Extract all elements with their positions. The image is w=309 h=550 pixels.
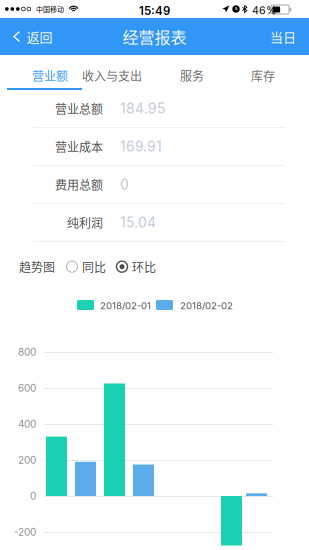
staticText: 0 (120, 176, 129, 193)
staticText: 环比 (132, 258, 156, 275)
staticText: 800 (18, 346, 36, 358)
staticText: 中国移动 (36, 4, 64, 14)
staticText: 0 (30, 490, 36, 502)
staticText: 趋势图 (19, 258, 55, 275)
staticText: 200 (18, 454, 36, 466)
staticText: 营业总额 (55, 100, 103, 117)
button[interactable]: 库存 (232, 59, 294, 92)
staticText: 收入与支出 (82, 67, 142, 84)
staticText: 同比 (82, 258, 106, 275)
staticText: 600 (18, 382, 36, 394)
staticText: -200 (14, 526, 36, 538)
staticText: 15.04 (120, 214, 156, 231)
staticText: 服务 (180, 67, 204, 84)
staticText: 费用总额 (55, 176, 103, 193)
staticText: 2018/02-02 (180, 300, 233, 312)
staticText: 纯利润 (67, 214, 103, 231)
button[interactable]: 收入与支出 (69, 59, 155, 92)
staticText: 营业额 (32, 67, 68, 84)
button[interactable]: 同比 (66, 254, 106, 279)
staticText: 400 (18, 418, 36, 430)
staticText: 经营报表 (122, 25, 186, 48)
staticText: 184.95 (120, 100, 166, 117)
button[interactable]: 返回 (0, 18, 64, 55)
staticText: 169.91 (120, 138, 162, 155)
button[interactable]: 营业额 (19, 59, 81, 92)
staticText: 15:49 (139, 4, 170, 18)
staticText: 当日 (270, 27, 296, 46)
button[interactable]: 服务 (161, 59, 223, 92)
staticText: 营业成本 (55, 138, 103, 155)
staticText: 库存 (251, 67, 275, 84)
staticText: 46% (252, 4, 276, 17)
staticText: 2018/02-01 (100, 300, 151, 312)
staticText: 返回 (26, 27, 52, 46)
button[interactable]: 当日 (256, 18, 309, 55)
button[interactable]: 环比 (116, 254, 156, 279)
